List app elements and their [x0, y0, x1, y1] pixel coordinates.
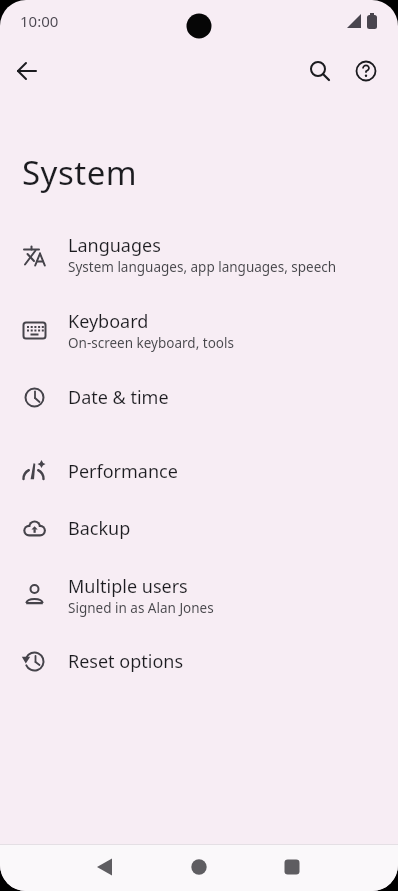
staticText: Reset options [68, 649, 184, 674]
staticText: Backup [68, 516, 131, 541]
staticText: Languages [68, 233, 161, 258]
button[interactable] [304, 55, 336, 87]
button[interactable]: Reset options [0, 634, 398, 694]
button[interactable]: Keyboard [0, 297, 398, 369]
button[interactable]: Date & time [0, 367, 398, 433]
staticText: System languages, app languages, speech [68, 258, 337, 276]
staticText: On-screen keyboard, tools [68, 334, 234, 352]
button[interactable]: Performance [0, 441, 398, 507]
staticText: 10:00 [20, 11, 59, 31]
staticText: Performance [68, 459, 178, 484]
staticText: Signed in as Alan Jones [68, 599, 214, 617]
button[interactable] [272, 847, 312, 887]
staticText: Multiple users [68, 574, 188, 599]
staticText: System [22, 150, 138, 195]
button[interactable] [11, 55, 43, 87]
staticText: Keyboard [68, 309, 149, 334]
button[interactable]: Languages [0, 219, 398, 295]
button[interactable]: Multiple users [0, 562, 398, 634]
staticText: Date & time [68, 385, 169, 410]
button[interactable] [85, 847, 125, 887]
button[interactable] [350, 55, 382, 87]
button[interactable] [179, 847, 219, 887]
button[interactable]: Backup [0, 503, 398, 559]
